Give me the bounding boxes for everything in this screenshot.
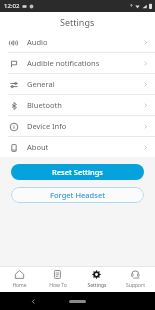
- staticText: Forget Headset: [50, 190, 106, 200]
- button[interactable]: Audible notifications: [0, 53, 155, 73]
- staticText: Settings: [87, 282, 107, 289]
- button[interactable]: Settings: [77, 266, 116, 292]
- staticText: Device Info: [27, 121, 142, 131]
- button[interactable]: How To: [38, 266, 77, 292]
- staticText: Support: [126, 282, 145, 289]
- button[interactable]: Support: [116, 266, 155, 292]
- other: Home gesture: [69, 300, 86, 303]
- button[interactable]: Device Info: [0, 116, 155, 136]
- button[interactable]: Reset Settings: [11, 164, 144, 180]
- button[interactable]: Audio: [0, 32, 155, 52]
- staticText: 12:02: [4, 2, 20, 10]
- button[interactable]: Bluetooth: [0, 95, 155, 115]
- other: Back: [30, 298, 37, 305]
- staticText: Bluetooth: [27, 100, 142, 110]
- staticText: Audio: [27, 37, 142, 47]
- button[interactable]: Forget Headset: [11, 187, 144, 203]
- staticText: Reset Settings: [52, 167, 104, 177]
- staticText: Audible notifications: [27, 58, 142, 68]
- button[interactable]: General: [0, 74, 155, 94]
- staticText: Settings: [60, 16, 95, 28]
- button[interactable]: Home: [0, 266, 38, 292]
- staticText: About: [27, 142, 142, 152]
- staticText: How To: [49, 282, 67, 289]
- staticText: General: [27, 79, 142, 89]
- staticText: Home: [12, 282, 27, 289]
- button[interactable]: About: [0, 137, 155, 157]
